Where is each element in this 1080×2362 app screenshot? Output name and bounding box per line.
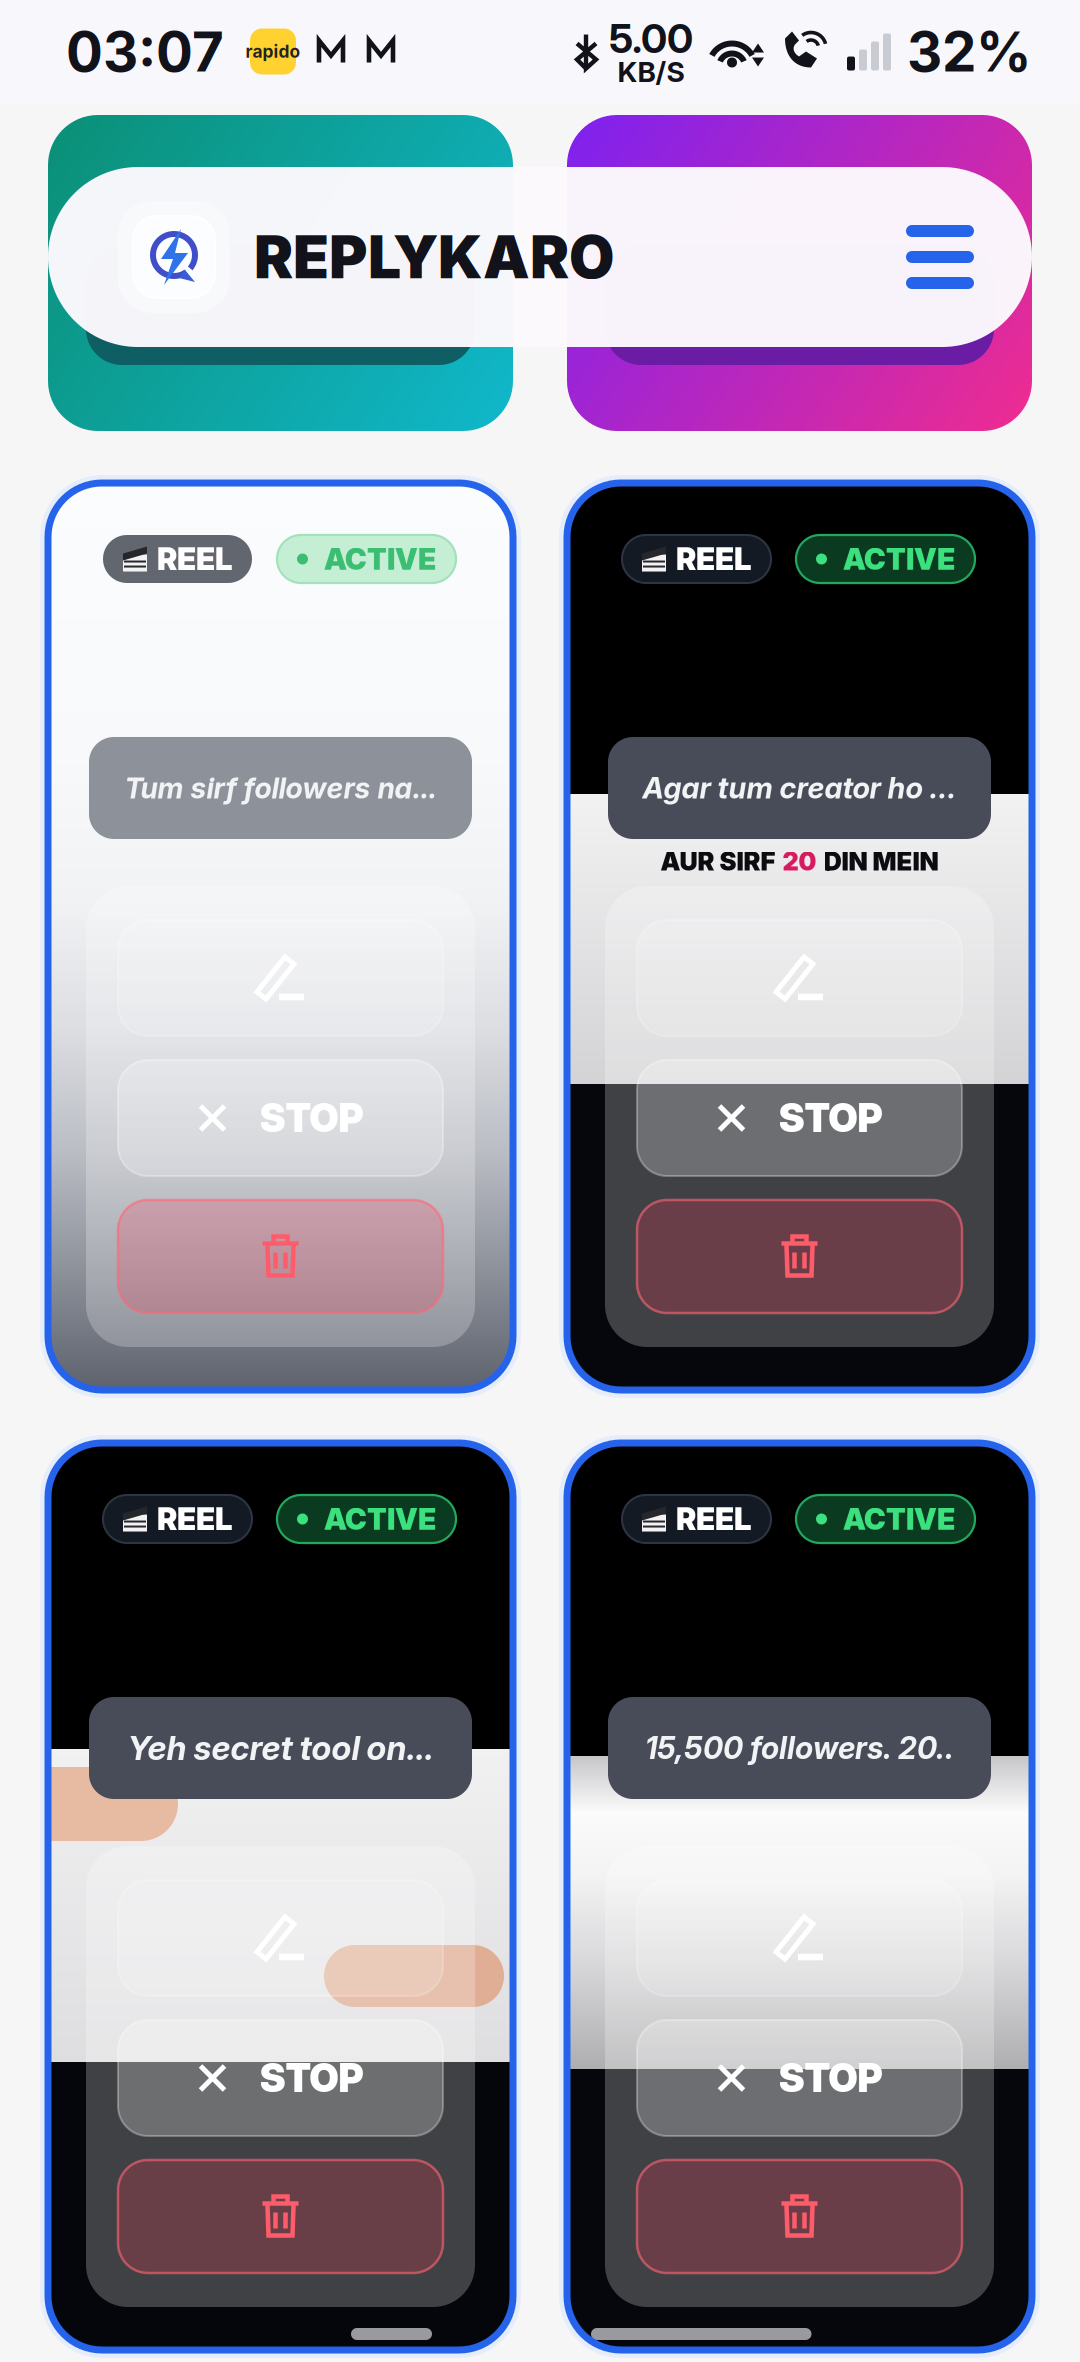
staticText: 03:07 [66,18,224,84]
staticText: STOP [778,2055,882,2101]
staticText: AUR SIRF [660,846,775,877]
staticText: Agar tum creator ho ... [642,770,956,806]
button[interactable]: REEL [40,475,521,1398]
staticText: STOP [778,1095,882,1141]
button[interactable]: STOP [637,1060,962,1176]
button[interactable]: Delete [637,1200,962,1313]
staticText: KB/S [617,55,684,89]
button[interactable]: Delete [118,2160,443,2273]
button[interactable]: AUR SIRF [559,475,1040,1398]
staticText: REEL [157,1500,232,1537]
staticText: DIN MEIN [823,846,938,877]
button[interactable]: Edit [637,920,962,1036]
button[interactable]: Edit [118,1880,443,1996]
staticText: Tum sirf followers na... [124,771,436,805]
staticText: ACTIVE [843,541,955,577]
staticText: STOP [259,1095,363,1141]
staticText: 32% [907,18,1032,84]
staticText: rapido [245,41,300,62]
staticText: ACTIVE [324,1501,436,1537]
staticText: STOP [259,2055,363,2101]
staticText: Yeh secret tool on... [127,1728,433,1768]
staticText: 5.00 [609,14,693,63]
button[interactable]: Menu [884,201,996,313]
staticText: 20 [782,846,816,877]
staticText: REEL [676,540,751,577]
staticText: 15,500 followers. 20.. [645,1730,954,1766]
button[interactable]: Edit [637,1880,962,1996]
staticText: REEL [157,540,232,577]
staticText: ACTIVE [843,1501,955,1537]
button[interactable]: REEL [559,1435,1040,2358]
button[interactable]: Delete [118,1200,443,1313]
button[interactable]: STOP [118,2020,443,2136]
button[interactable]: REEL [40,1435,521,2358]
button[interactable]: STOP [637,2020,962,2136]
staticText: ACTIVE [324,541,436,577]
button[interactable]: STOP [118,1060,443,1176]
button[interactable]: Edit [118,920,443,1036]
button[interactable]: Delete [637,2160,962,2273]
staticText: REPLYKARO [254,221,614,292]
staticText: REEL [676,1500,751,1537]
